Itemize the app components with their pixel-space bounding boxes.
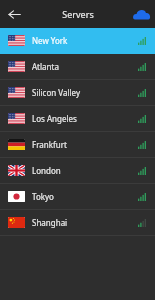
staticText: Tokyo	[32, 191, 138, 202]
button[interactable]: Frankfurt	[0, 132, 155, 157]
button[interactable]: Shanghai	[0, 210, 155, 235]
staticText: Frankfurt	[32, 139, 138, 150]
button[interactable]: Tokyo	[0, 184, 155, 209]
staticText: London	[32, 165, 138, 176]
button[interactable]: Cloud	[127, 0, 155, 28]
staticText: Atlanta	[32, 61, 138, 72]
staticText: Servers	[62, 8, 94, 20]
button[interactable]: London	[0, 158, 155, 183]
button[interactable]: New York	[0, 28, 155, 53]
button[interactable]: Los Angeles	[0, 106, 155, 131]
button[interactable]: Atlanta	[0, 54, 155, 79]
button[interactable]: Back	[0, 0, 28, 28]
button[interactable]: Silicon Valley	[0, 80, 155, 105]
staticText: New York	[32, 35, 138, 46]
staticText: Los Angeles	[32, 113, 138, 124]
staticText: Silicon Valley	[32, 87, 138, 98]
staticText: Shanghai	[32, 217, 138, 228]
